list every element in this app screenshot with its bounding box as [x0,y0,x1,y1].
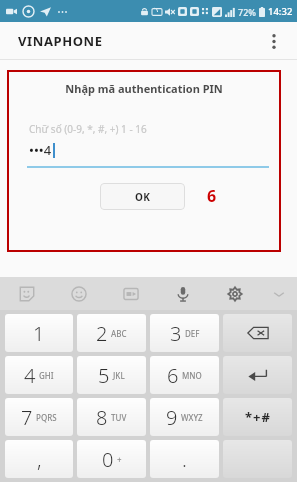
staticText: JKL [113,370,125,381]
staticText: 6 [207,185,217,207]
button[interactable]: 3 [150,314,219,352]
button[interactable]: Stickers [0,277,53,310]
staticText: WXYZ [181,412,203,423]
staticText: *+# [245,408,271,426]
button[interactable]: Keyboard settings [209,277,261,310]
button[interactable]: Emoji [53,277,105,310]
button[interactable]: 4 [5,356,73,394]
button[interactable]: 5 [77,356,146,394]
staticText: Chữ số (0-9, *, #, +) 1 - 16 [29,122,147,136]
button[interactable]: 0 [77,440,146,478]
staticText: •••4 [29,141,52,159]
staticText: , [37,446,42,473]
staticText: . [182,446,187,473]
staticText: VINAPHONE [18,32,103,50]
staticText: 8 [96,404,108,431]
staticText: MNO [182,370,202,381]
staticText: DEF [185,328,200,339]
button[interactable]: More options [260,27,288,55]
staticText: + [117,454,122,465]
staticText: 4 [24,362,36,389]
button[interactable]: Voice input [157,277,209,310]
button[interactable]: 1 [5,314,73,352]
staticText: 72% [238,6,256,18]
staticText: 1 [33,320,45,347]
button[interactable]: Key [223,440,292,478]
staticText: ABC [111,328,127,339]
staticText: 14:32 [268,5,293,18]
button[interactable]: Backspace [223,314,292,352]
button[interactable]: OK [100,183,185,210]
staticText: PQRS [36,412,57,423]
button[interactable]: , [5,440,73,478]
staticText: TUV [111,412,127,423]
button[interactable]: Hide keyboard [261,277,297,310]
button[interactable]: GIF [105,277,157,310]
button[interactable]: 8 [77,398,146,436]
button[interactable]: 7 [5,398,73,436]
staticText: 2 [96,320,108,347]
button[interactable]: 2 [77,314,146,352]
button[interactable]: Enter [223,356,292,394]
staticText: 9 [166,404,178,431]
staticText: GHI [39,370,54,381]
staticText: 0 [102,446,114,473]
button[interactable]: 6 [150,356,219,394]
button[interactable]: Symbols [223,398,292,436]
staticText: 6 [167,362,179,389]
staticText: 5 [98,362,110,389]
staticText: 3 [170,320,182,347]
button[interactable]: . [150,440,219,478]
staticText: 7 [21,404,33,431]
staticText: Nhập mã authentication PIN [7,81,281,96]
button[interactable]: 9 [150,398,219,436]
staticText: OK [135,190,151,204]
